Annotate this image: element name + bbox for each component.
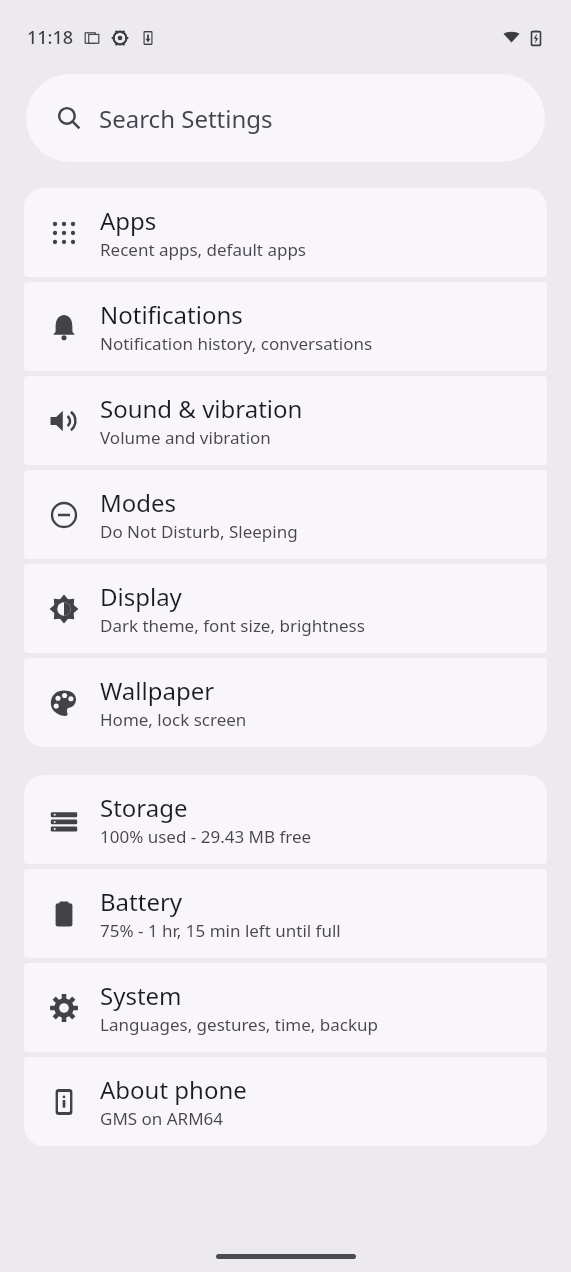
staticText: System xyxy=(100,979,182,1012)
staticText: Do Not Disturb, Sleeping xyxy=(100,520,298,543)
button[interactable]: Battery xyxy=(24,869,547,958)
button[interactable]: Modes xyxy=(24,470,547,559)
staticText: 11:18 xyxy=(27,25,74,50)
staticText: Apps xyxy=(100,204,157,237)
staticText: GMS on ARM64 xyxy=(100,1107,224,1130)
staticText: Languages, gestures, time, backup xyxy=(100,1013,379,1036)
button[interactable]: Wallpaper xyxy=(24,658,547,747)
staticText: Notification history, conversations xyxy=(100,332,373,355)
button[interactable]: System xyxy=(24,963,547,1052)
staticText: Volume and vibration xyxy=(100,426,271,449)
button[interactable]: Apps xyxy=(24,188,547,277)
staticText: 75% - 1 hr, 15 min left until full xyxy=(100,919,341,942)
button[interactable]: Sound & vibration xyxy=(24,376,547,465)
staticText: Home, lock screen xyxy=(100,708,247,731)
staticText: Notifications xyxy=(100,298,243,331)
staticText: Search Settings xyxy=(99,102,273,135)
button[interactable]: Search Settings xyxy=(26,74,545,162)
button[interactable]: About phone xyxy=(24,1057,547,1146)
staticText: Recent apps, default apps xyxy=(100,238,307,261)
staticText: Storage xyxy=(100,791,188,824)
staticText: Battery xyxy=(100,885,183,918)
staticText: 100% used - 29.43 MB free xyxy=(100,825,312,848)
button[interactable]: Display xyxy=(24,564,547,653)
staticText: Dark theme, font size, brightness xyxy=(100,614,365,637)
staticText: Modes xyxy=(100,486,177,519)
staticText: About phone xyxy=(100,1073,247,1106)
staticText: Wallpaper xyxy=(100,674,215,707)
button[interactable]: Storage xyxy=(24,775,547,864)
staticText: Sound & vibration xyxy=(100,392,303,425)
staticText: Display xyxy=(100,580,182,613)
button[interactable]: Notifications xyxy=(24,282,547,371)
